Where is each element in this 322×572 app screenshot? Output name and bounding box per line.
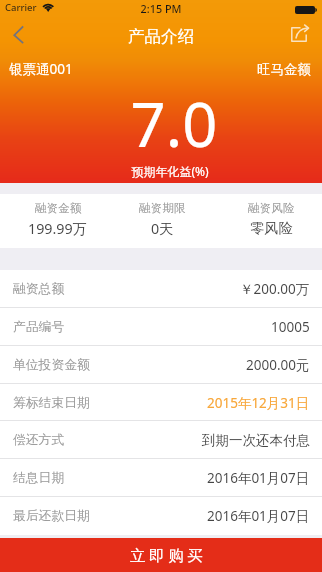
staticText: ￥200.00万 <box>240 280 310 298</box>
staticText: 最后还款日期 <box>13 508 90 524</box>
button[interactable]: 立即购买 <box>0 538 322 572</box>
staticText: 立即购买 <box>130 546 207 566</box>
button[interactable]: 单位投资金额 <box>0 346 322 384</box>
button[interactable]: 偿还方式 <box>0 421 322 459</box>
staticText: 2015年12月31日 <box>207 394 310 412</box>
staticText: 筹标结束日期 <box>13 395 90 411</box>
staticText: 结息日期 <box>13 470 65 486</box>
staticText: 2000.00元 <box>246 356 310 374</box>
staticText: 融资总额 <box>13 281 65 297</box>
button[interactable]: 融资期限 <box>117 201 207 239</box>
button[interactable]: Share <box>282 18 322 50</box>
staticText: 银票通001 <box>9 60 73 78</box>
staticText: 融资期限 <box>139 201 186 216</box>
staticText: 零风险 <box>250 219 293 237</box>
staticText: 预期年化益(%) <box>9 163 322 179</box>
button[interactable]: Back <box>0 20 42 52</box>
staticText: 199.99万 <box>28 219 88 239</box>
button[interactable]: 融资总额 <box>0 270 322 308</box>
staticText: 0天 <box>151 219 174 239</box>
button[interactable]: 筹标结束日期 <box>0 384 322 422</box>
staticText: Carrier <box>5 1 37 14</box>
staticText: 到期一次还本付息 <box>202 432 310 449</box>
staticText: 产品编号 <box>13 319 65 335</box>
staticText: 旺马金额 <box>257 61 311 78</box>
staticText: 2016年01月07日 <box>207 507 310 525</box>
staticText: 2016年01月07日 <box>207 469 310 487</box>
staticText: 2:15 PM <box>0 1 322 16</box>
button[interactable]: 最后还款日期 <box>0 497 322 535</box>
staticText: 单位投资金额 <box>13 357 90 373</box>
button[interactable]: 产品编号 <box>0 308 322 346</box>
staticText: 产品介绍 <box>0 26 322 47</box>
button[interactable]: 结息日期 <box>0 459 322 497</box>
button[interactable]: 融资金额 <box>13 201 103 239</box>
button[interactable]: 融资风险 <box>226 201 316 237</box>
staticText: 10005 <box>271 318 310 336</box>
staticText: 偿还方式 <box>13 432 65 448</box>
staticText: 融资风险 <box>248 201 295 216</box>
staticText: 融资金额 <box>35 201 82 216</box>
staticText: 7.0 <box>13 81 322 165</box>
